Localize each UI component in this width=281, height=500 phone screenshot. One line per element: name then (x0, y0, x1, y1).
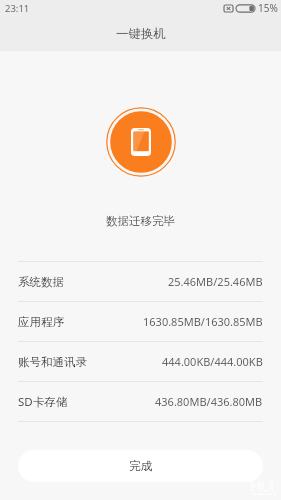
staticText: 1630.85MB/1630.85MB (143, 314, 263, 329)
button[interactable]: SD卡存储 (0, 382, 281, 421)
button[interactable]: 完成 (18, 450, 263, 482)
other: Silent mode (224, 4, 233, 13)
staticText: 436.80MB/436.80MB (155, 394, 263, 409)
staticText: 账号和通讯录 (18, 355, 87, 369)
staticText: 完成 (129, 459, 152, 473)
staticText: 应用程序 (18, 315, 64, 329)
staticText: 23:11 (5, 2, 30, 15)
button[interactable]: 应用程序 (0, 302, 281, 341)
staticText: 数据迁移完毕 (106, 214, 175, 228)
staticText: 系统数据 (18, 275, 64, 289)
staticText: 25.46MB/25.46MB (168, 274, 263, 289)
other: Battery 15 percent (236, 4, 255, 13)
button[interactable]: 账号和通讯录 (0, 342, 281, 381)
staticText: 15% (258, 1, 278, 15)
staticText: SD卡存储 (18, 394, 68, 410)
button[interactable]: 一键换机 (0, 16, 281, 51)
staticText: 444.00KB/444.00KB (162, 354, 263, 369)
staticText: 一键换机 (116, 26, 166, 42)
button[interactable]: 系统数据 (0, 262, 281, 301)
